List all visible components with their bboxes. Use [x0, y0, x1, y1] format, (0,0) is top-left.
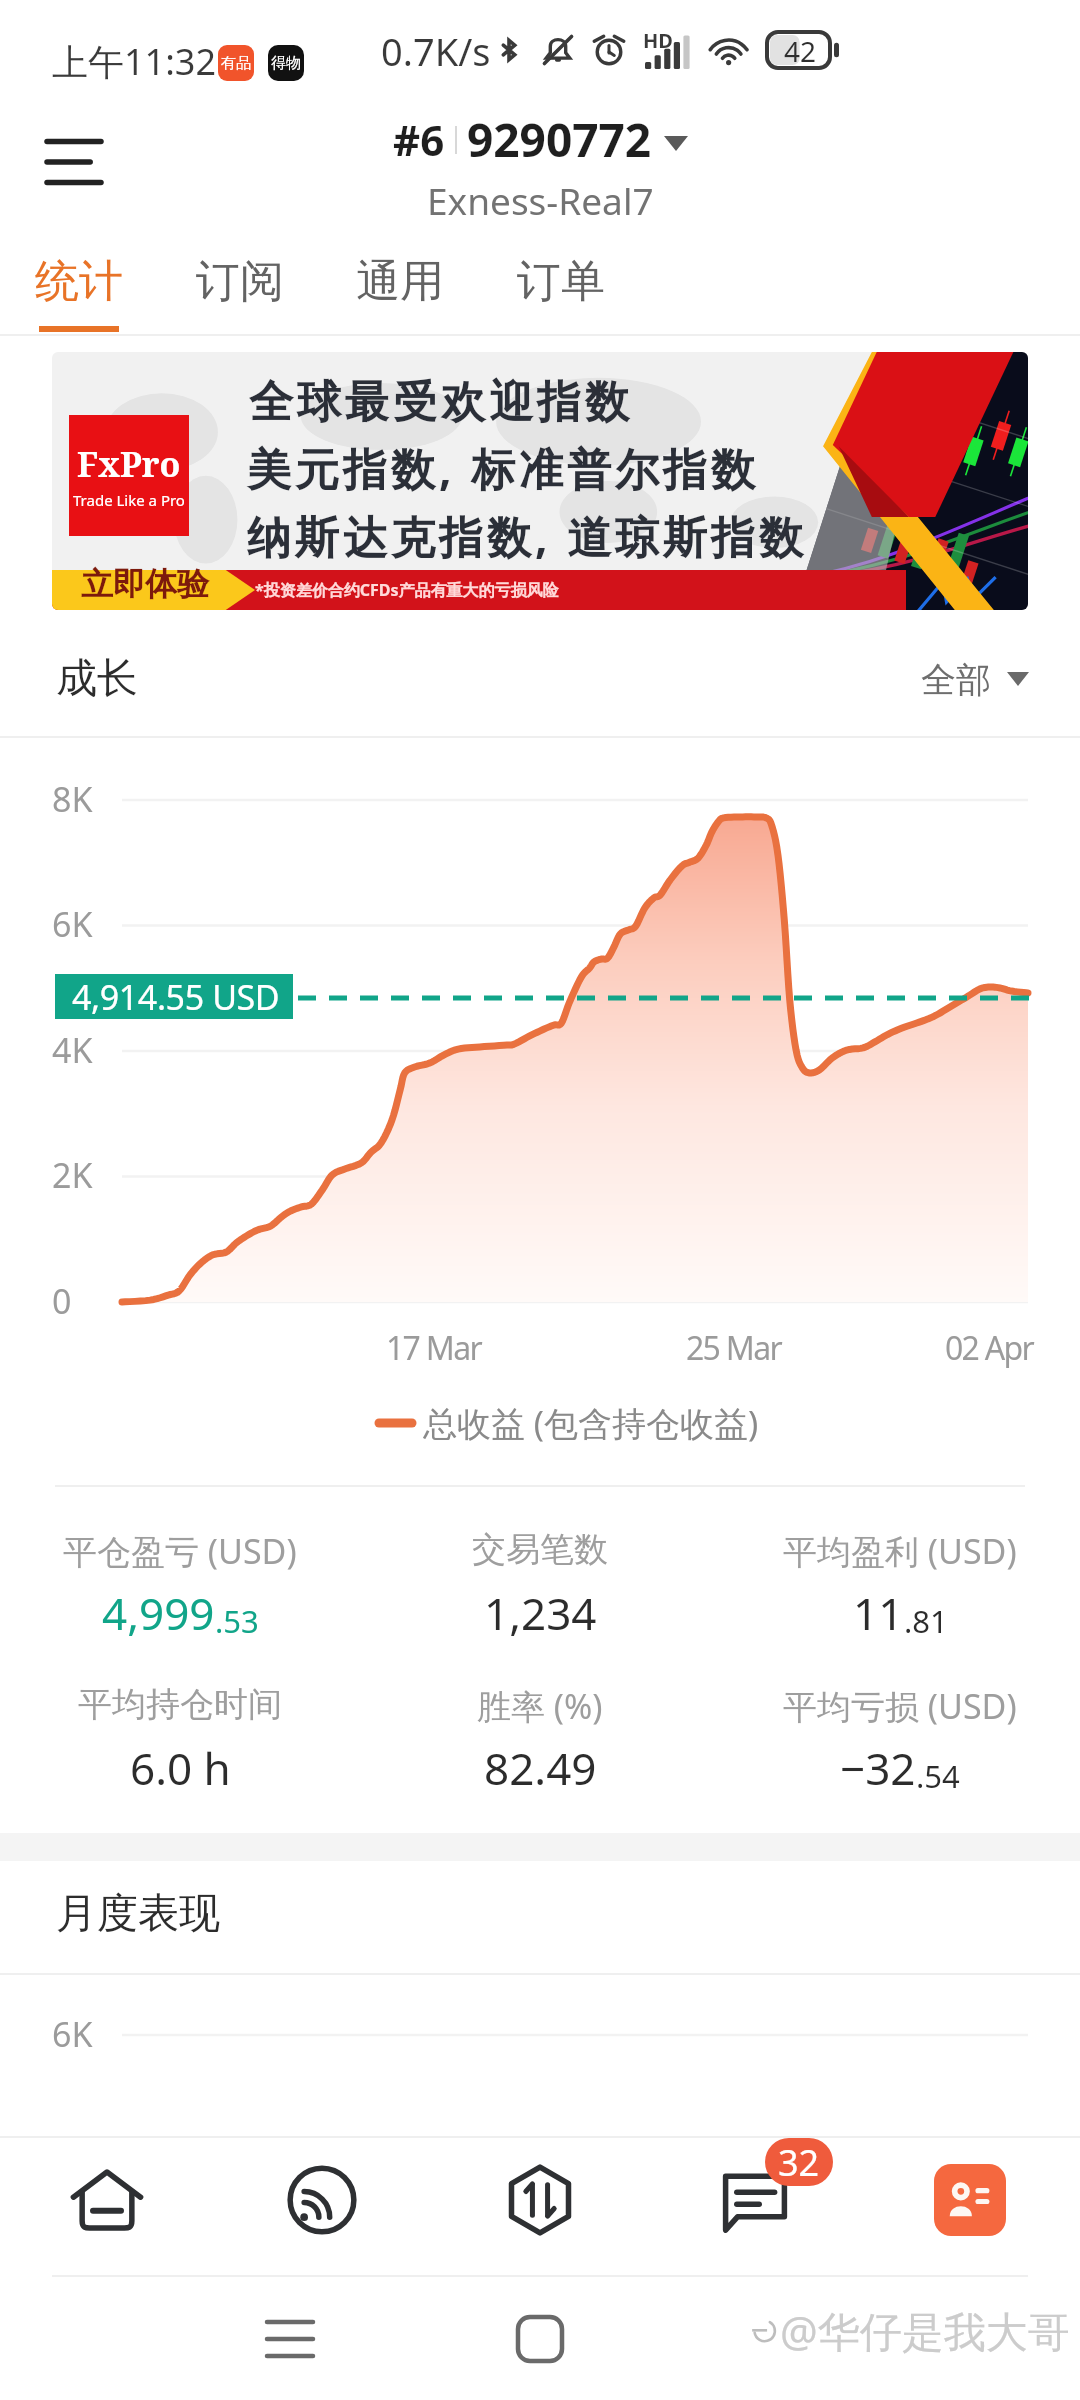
staticText: 得物 — [271, 54, 301, 73]
staticText: 2K — [52, 1152, 93, 1198]
staticText: 4,999 — [102, 1583, 215, 1643]
staticText: 全球最受欢迎指数 — [247, 375, 631, 430]
staticText: 4K — [52, 1027, 93, 1073]
staticText: HD — [643, 27, 673, 54]
button[interactable]: Recents — [215, 2277, 365, 2400]
button[interactable]: #6 — [393, 108, 688, 225]
button[interactable]: News — [247, 2138, 397, 2262]
staticText: 平仓盈亏 (USD) — [63, 1528, 297, 1574]
staticText: 总收益 (包含持仓收益) — [423, 1400, 759, 1446]
staticText: 6K — [52, 901, 93, 947]
button[interactable]: Profile — [895, 2138, 1045, 2262]
staticText: 胜率 (%) — [477, 1683, 603, 1729]
staticText: 42 — [784, 32, 817, 68]
staticText: #6 — [393, 111, 445, 168]
button[interactable]: Home — [465, 2277, 615, 2400]
staticText: FxPro — [77, 441, 181, 487]
staticText: 0.7K/s — [381, 25, 491, 77]
button[interactable]: 统计 — [0, 240, 159, 336]
staticText: 订阅 — [196, 254, 284, 309]
staticText: −32 — [840, 1738, 916, 1798]
staticText: 6.0 h — [130, 1738, 231, 1798]
button[interactable]: 订阅 — [160, 240, 320, 336]
staticText: .53 — [215, 1600, 259, 1642]
staticText: 8K — [52, 776, 93, 822]
staticText: 通用 — [356, 254, 444, 309]
staticText: 纳斯达克指数, 道琼斯指数 — [247, 506, 807, 566]
staticText: 全部 — [921, 658, 991, 702]
staticText: 0 — [52, 1278, 72, 1324]
staticText: 美元指数, 标准普尔指数 — [247, 438, 759, 498]
staticText: 订单 — [517, 254, 605, 309]
button[interactable]: 订单 — [481, 240, 641, 336]
staticText: 1,234 — [484, 1583, 597, 1643]
staticText: 6K — [52, 2011, 93, 2057]
staticText: 平均亏损 (USD) — [783, 1683, 1017, 1729]
staticText: Trade Like a Pro — [73, 490, 185, 510]
button[interactable]: FxPro — [52, 352, 1028, 610]
button[interactable]: 全部 — [921, 657, 1029, 701]
staticText: 成长 — [56, 653, 138, 705]
staticText: 32 — [778, 2138, 820, 2186]
staticText: 有品 — [221, 54, 251, 73]
staticText: 9290772 — [467, 108, 652, 171]
staticText: 25 Mar — [686, 1326, 781, 1370]
button[interactable]: Trade — [465, 2138, 615, 2262]
staticText: Exness-Real7 — [427, 175, 654, 225]
staticText: 82.49 — [484, 1738, 597, 1798]
button[interactable]: Menu — [26, 114, 122, 210]
staticText: 交易笔数 — [472, 1528, 608, 1571]
staticText: 上午11:32 — [52, 37, 217, 86]
staticText: 统计 — [35, 254, 123, 309]
staticText: 月度表现 — [56, 1888, 220, 1940]
staticText: 平均盈利 (USD) — [783, 1528, 1017, 1574]
staticText: 平均持仓时间 — [78, 1683, 282, 1726]
button[interactable]: 通用 — [320, 240, 480, 336]
staticText: .81 — [904, 1600, 948, 1642]
staticText: 4,914.55 USD — [72, 974, 280, 1019]
staticText: .54 — [916, 1755, 960, 1797]
staticText: @华仔是我大哥 — [780, 2302, 1070, 2359]
button[interactable]: Quotes — [32, 2138, 182, 2262]
staticText: 17 Mar — [386, 1326, 481, 1370]
staticText: 立即体验 — [81, 564, 209, 604]
staticText: 11 — [853, 1583, 904, 1643]
staticText: 02 Apr — [945, 1326, 1034, 1370]
button[interactable]: Messages — [680, 2138, 830, 2262]
staticText: *投资差价合约CFDs产品有重大的亏损风险 — [255, 579, 559, 601]
